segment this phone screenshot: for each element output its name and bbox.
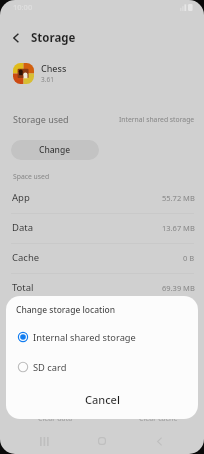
staticText: 69.39 MB xyxy=(162,283,195,293)
button[interactable]: Navigate up xyxy=(6,28,26,48)
staticText: Change storage location xyxy=(16,304,116,316)
staticText: Change xyxy=(39,144,71,156)
staticText: App xyxy=(12,191,30,204)
staticText: 10:00 xyxy=(13,2,33,12)
staticText: 0 B xyxy=(183,253,195,263)
staticText: 55.72 MB xyxy=(162,193,195,203)
staticText: Internal shared storage xyxy=(33,331,136,344)
button[interactable]: Chess xyxy=(0,57,204,89)
staticText: Space used xyxy=(13,172,50,181)
staticText: 13.67 MB xyxy=(162,223,195,233)
staticText: Chess xyxy=(41,62,67,74)
button[interactable]: Cache xyxy=(0,244,204,273)
button[interactable]: Clear data xyxy=(0,412,204,426)
staticText: Total xyxy=(12,281,34,294)
button[interactable]: App xyxy=(0,184,204,213)
staticText: Cache xyxy=(12,251,40,264)
staticText: Clear data xyxy=(38,414,73,424)
staticText: 3.61 xyxy=(41,75,54,84)
button[interactable]: Total xyxy=(0,274,204,303)
staticText: Clear cache xyxy=(139,414,178,424)
staticText: Storage xyxy=(31,30,76,46)
staticText: Internal shared storage xyxy=(119,115,195,124)
staticText: Data xyxy=(12,221,34,234)
staticText: Cancel xyxy=(85,392,120,407)
button[interactable]: Internal shared storage xyxy=(6,326,198,348)
button[interactable]: Cancel xyxy=(6,386,198,412)
button[interactable]: Change xyxy=(11,140,99,160)
button[interactable]: Data xyxy=(0,214,204,243)
staticText: SD card xyxy=(33,361,67,374)
button[interactable]: Recent apps xyxy=(30,428,58,454)
button[interactable]: SD card xyxy=(6,356,198,378)
staticText: Storage used xyxy=(13,113,69,125)
